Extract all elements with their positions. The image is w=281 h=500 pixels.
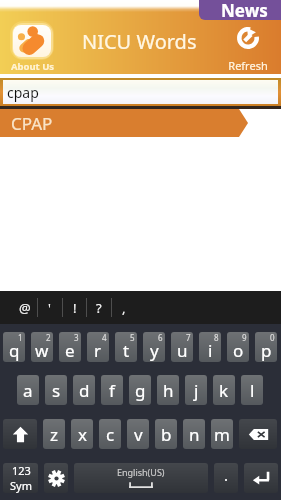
staticText: e (65, 339, 75, 362)
button[interactable]: j (185, 375, 207, 405)
button[interactable]: x (71, 419, 93, 449)
button[interactable]: 5 (115, 332, 137, 362)
button[interactable]: Period (214, 463, 238, 493)
staticText: u (177, 339, 188, 362)
staticText: c (106, 423, 115, 446)
staticText: g (135, 379, 146, 402)
staticText: j (194, 379, 199, 402)
button[interactable]: 3 (59, 332, 81, 362)
staticText: l (250, 379, 255, 402)
button[interactable]: g (129, 375, 151, 405)
staticText: Sym (10, 478, 32, 493)
button[interactable]: k (213, 375, 235, 405)
staticText: x (78, 423, 87, 446)
button[interactable]: 2 (31, 332, 53, 362)
staticText: y (150, 339, 159, 362)
staticText: d (79, 379, 90, 402)
button[interactable]: Shift (3, 419, 37, 449)
button[interactable]: ' (37, 291, 62, 324)
staticText: English(US) (117, 466, 165, 478)
staticText: cpap (7, 83, 39, 102)
staticText: r (94, 339, 102, 362)
button[interactable]: c (99, 419, 121, 449)
staticText: h (163, 379, 174, 402)
staticText: 3 (74, 332, 79, 343)
staticText: s (52, 379, 61, 402)
staticText: 0 (270, 332, 275, 343)
staticText: 4 (102, 332, 107, 343)
button[interactable]: 0 (255, 332, 277, 362)
staticText: 5 (130, 332, 135, 343)
staticText: a (23, 379, 33, 402)
staticText: CPAP (11, 112, 53, 135)
staticText: t (123, 339, 130, 362)
staticText: @ (19, 299, 31, 317)
button[interactable]: Enter (244, 463, 278, 493)
button[interactable]: @ (12, 291, 37, 324)
button[interactable]: 6 (143, 332, 165, 362)
button[interactable]: News (199, 0, 281, 20)
button[interactable]: Symbols (3, 463, 38, 493)
button[interactable]: a (17, 375, 39, 405)
staticText: q (9, 339, 20, 362)
staticText: Refresh (228, 58, 268, 73)
button[interactable]: 9 (227, 332, 249, 362)
button[interactable]: Settings (44, 463, 68, 493)
staticText: z (50, 423, 58, 446)
button[interactable]: h (157, 375, 179, 405)
button[interactable]: l (241, 375, 263, 405)
button[interactable]: ? (86, 291, 111, 324)
staticText: ? (96, 299, 102, 317)
staticText: o (233, 339, 244, 362)
staticText: i (208, 339, 213, 362)
staticText: w (35, 339, 49, 362)
staticText: About Us (9, 60, 56, 73)
staticText: f (109, 379, 115, 402)
button[interactable]: 1 (3, 332, 25, 362)
staticText: 123 (12, 463, 31, 478)
staticText: p (261, 339, 272, 362)
button[interactable]: f (101, 375, 123, 405)
button[interactable]: 4 (87, 332, 109, 362)
button[interactable]: d (73, 375, 95, 405)
button[interactable]: b (155, 419, 177, 449)
staticText: ! (73, 299, 77, 317)
button[interactable]: 8 (199, 332, 221, 362)
button[interactable]: m (211, 419, 233, 449)
button[interactable]: 7 (171, 332, 193, 362)
button[interactable]: Refresh (224, 26, 272, 72)
staticText: NICU Words (82, 28, 197, 55)
staticText: 6 (158, 332, 163, 343)
staticText: n (189, 423, 200, 446)
staticText: ' (48, 299, 51, 317)
staticText: m (214, 423, 230, 446)
staticText: News (221, 0, 268, 19)
staticText: v (134, 423, 143, 446)
staticText: 7 (186, 332, 191, 343)
button[interactable]: v (127, 419, 149, 449)
staticText: b (161, 423, 172, 446)
button[interactable]: z (43, 419, 65, 449)
button[interactable]: n (183, 419, 205, 449)
button[interactable]: s (45, 375, 67, 405)
button[interactable]: Backspace (239, 419, 277, 449)
staticText: . (224, 465, 229, 485)
staticText: 8 (214, 332, 219, 343)
staticText: 1 (18, 332, 23, 343)
button[interactable]: Space (74, 463, 208, 493)
button[interactable]: ! (62, 291, 87, 324)
button[interactable]: , (111, 291, 136, 324)
staticText: 2 (46, 332, 51, 343)
staticText: 9 (242, 332, 247, 343)
staticText: , (122, 299, 126, 317)
button[interactable]: About Us (8, 20, 57, 70)
staticText: k (219, 379, 229, 402)
